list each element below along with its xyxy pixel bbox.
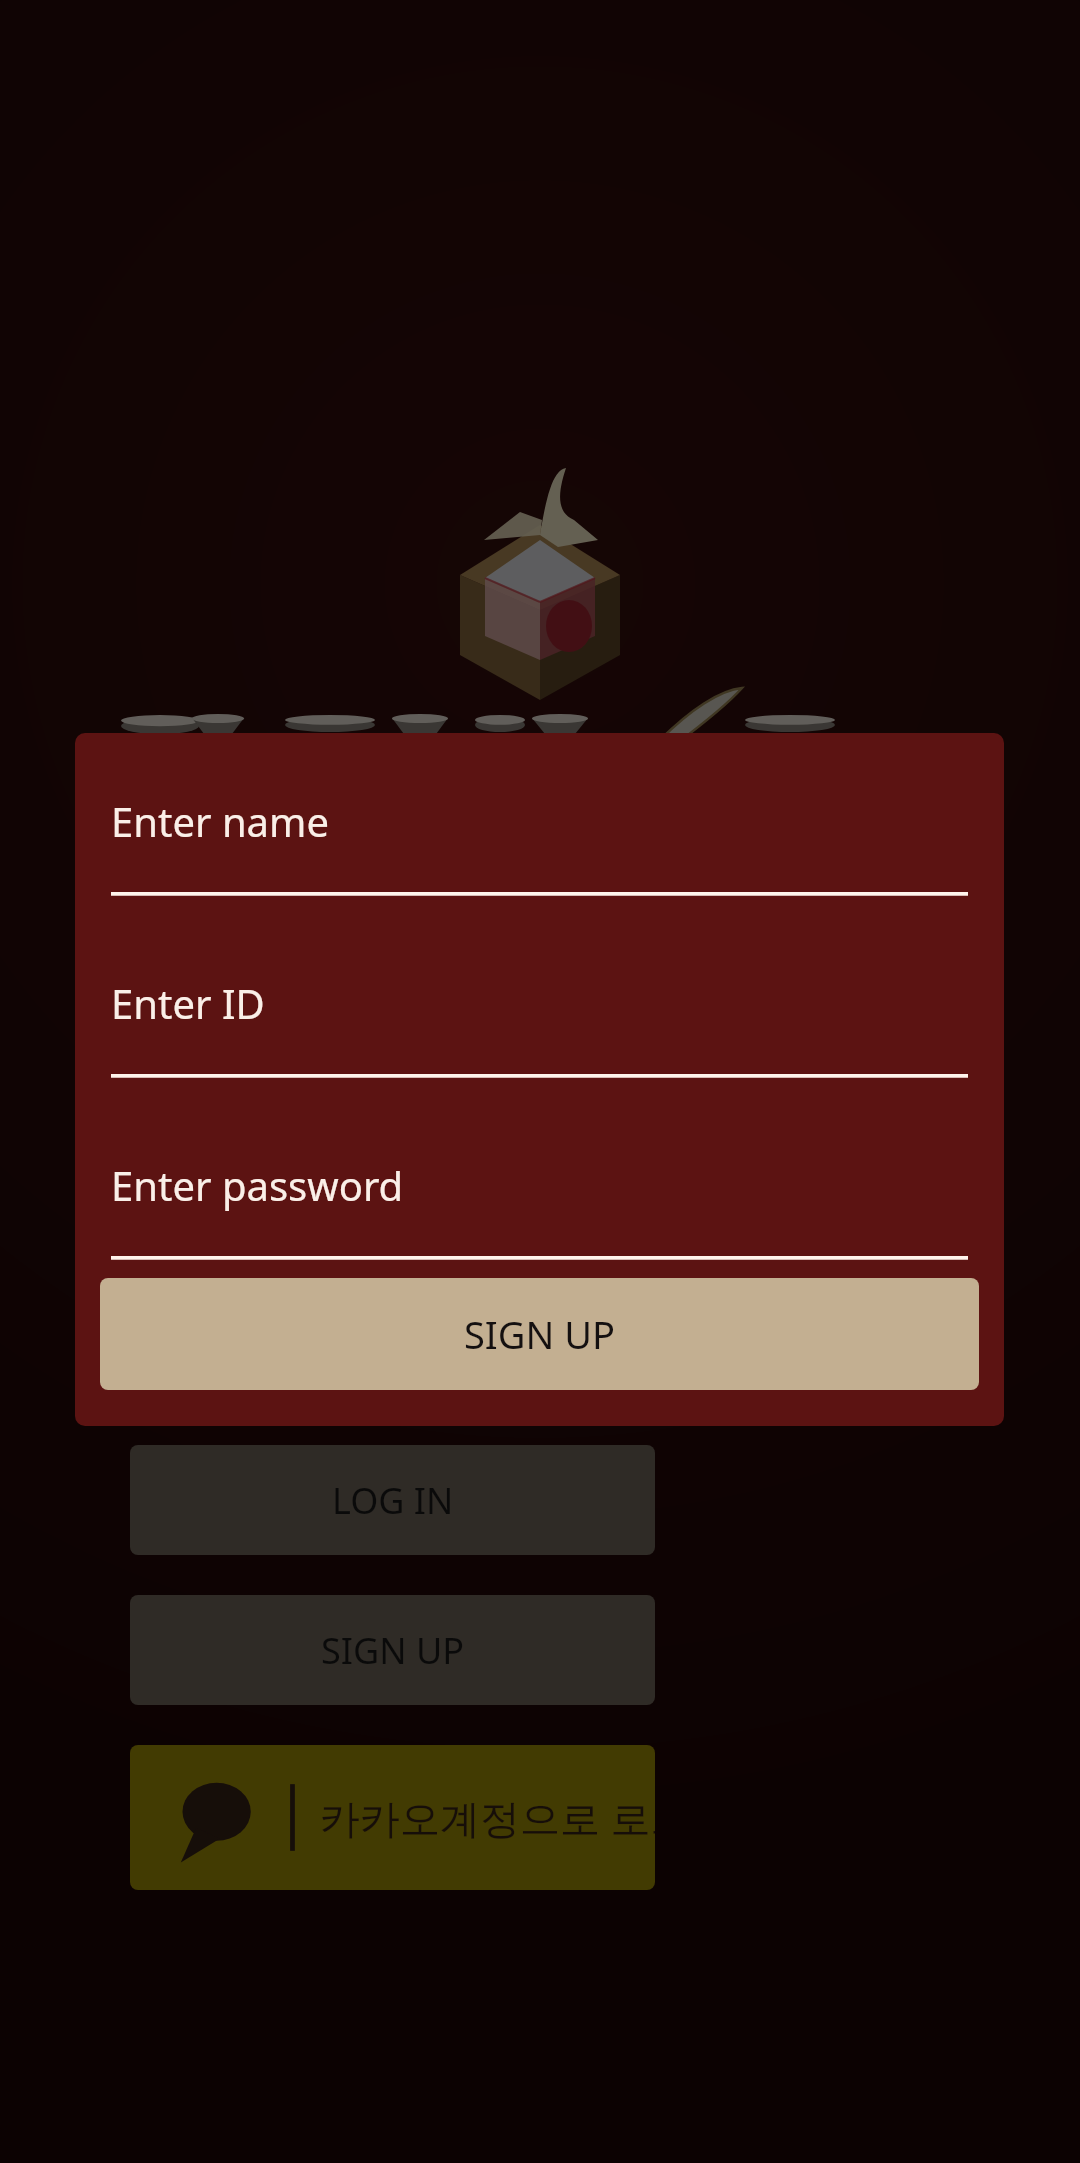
staticText: Enter ID	[111, 976, 265, 1030]
button[interactable]: LOG IN	[130, 1445, 655, 1555]
button[interactable]: Enter ID	[111, 976, 968, 1080]
button[interactable]: SIGN UP	[100, 1278, 979, 1390]
staticText: SIGN UP	[464, 1308, 615, 1360]
button[interactable]: Enter name	[111, 794, 968, 898]
staticText: Enter password	[111, 1158, 404, 1212]
staticText: 카카오계정으로 로그인	[320, 1790, 655, 1845]
staticText: SIGN UP	[321, 1626, 464, 1675]
staticText: LOG IN	[332, 1476, 454, 1525]
button[interactable]: Enter password	[111, 1158, 968, 1262]
button[interactable]: SIGN UP	[130, 1595, 655, 1705]
button[interactable]: 카카오계정으로 로그인	[130, 1745, 655, 1890]
staticText: Enter name	[111, 794, 329, 848]
